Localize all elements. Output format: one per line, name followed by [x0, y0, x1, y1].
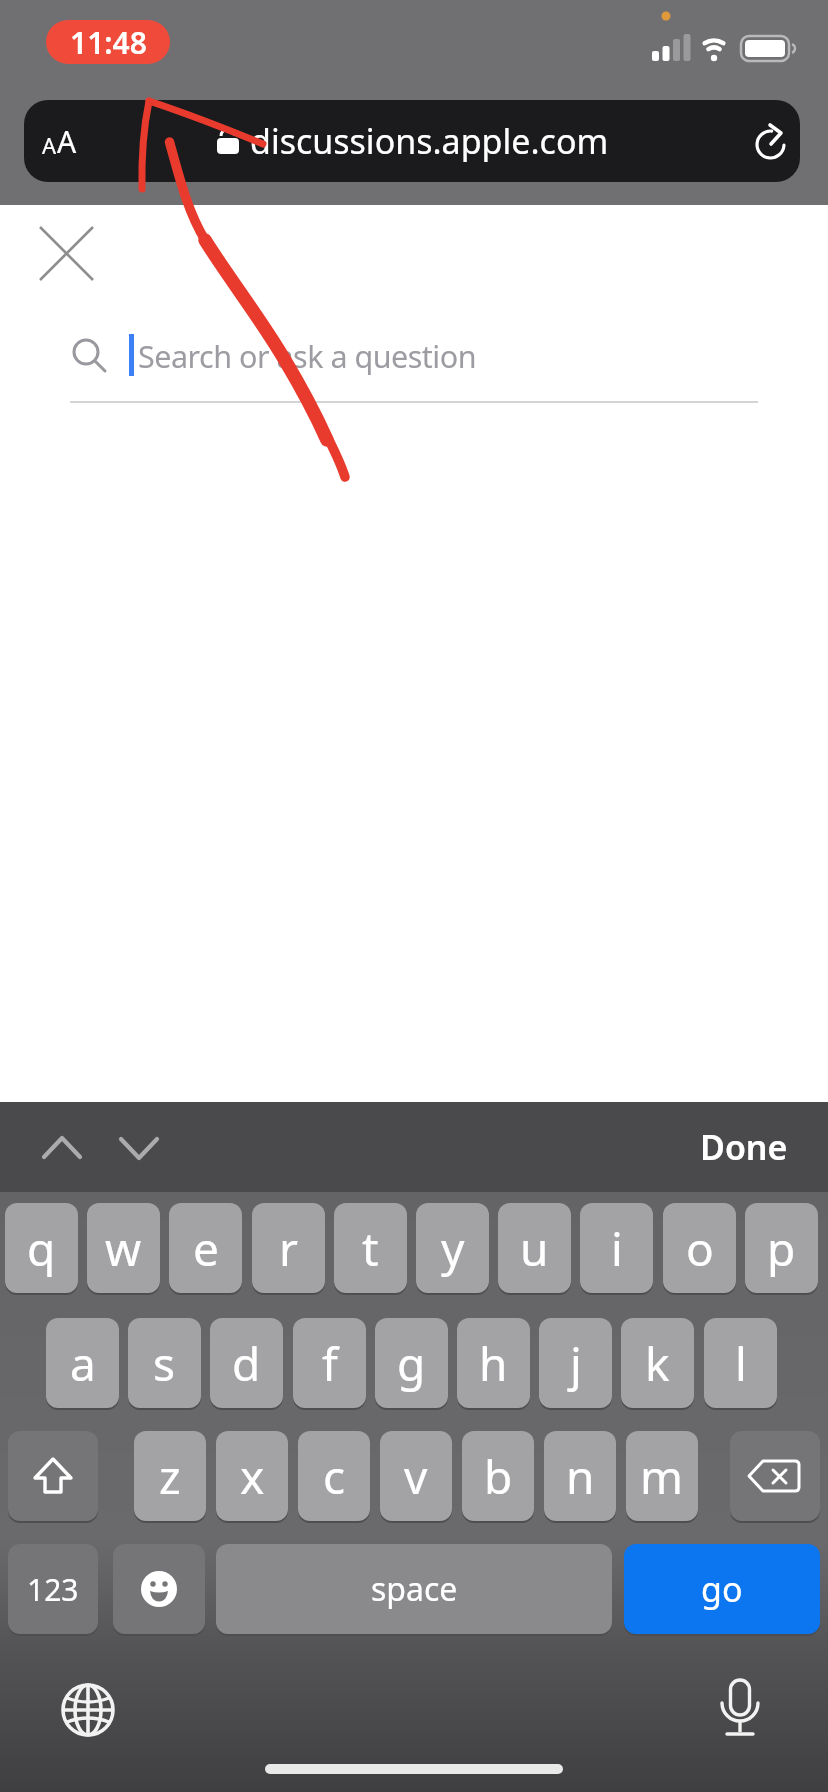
button[interactable]: p [745, 1203, 818, 1293]
button[interactable]: h [457, 1318, 530, 1408]
button[interactable]: m [626, 1431, 698, 1521]
staticText: i [611, 1217, 623, 1280]
staticText: y [441, 1217, 465, 1280]
staticText: s [153, 1332, 176, 1395]
staticText: a [70, 1332, 96, 1395]
staticText: c [323, 1445, 346, 1508]
button[interactable]: A [24, 100, 800, 182]
staticText: j [570, 1332, 582, 1395]
button[interactable]: j [539, 1318, 612, 1408]
button[interactable]: 123 [8, 1544, 98, 1634]
staticText: go [701, 1566, 743, 1612]
staticText: b [484, 1445, 513, 1508]
staticText: f [322, 1332, 338, 1395]
button[interactable]: e [169, 1203, 242, 1293]
button[interactable]: i [580, 1203, 653, 1293]
staticText: g [397, 1332, 426, 1395]
button[interactable]: f [293, 1318, 366, 1408]
staticText: u [520, 1217, 549, 1280]
button[interactable]: n [544, 1431, 616, 1521]
staticText: Done [700, 1124, 788, 1170]
staticText: z [159, 1445, 181, 1508]
button[interactable]: z [134, 1431, 206, 1521]
button[interactable]: k [621, 1318, 694, 1408]
staticText: q [27, 1217, 56, 1280]
staticText: Search or ask a question [138, 335, 477, 377]
button[interactable]: a [46, 1318, 119, 1408]
button[interactable]: u [498, 1203, 571, 1293]
staticText: l [735, 1332, 747, 1395]
button[interactable]: y [416, 1203, 489, 1293]
button[interactable]: space [216, 1544, 612, 1634]
button[interactable]: w [87, 1203, 160, 1293]
button[interactable]: go [624, 1544, 820, 1634]
button[interactable]: l [704, 1318, 777, 1408]
button[interactable]: v [380, 1431, 452, 1521]
button[interactable]: g [375, 1318, 448, 1408]
button[interactable]: d [210, 1318, 283, 1408]
button[interactable] [44, 1126, 164, 1170]
button[interactable] [113, 1544, 205, 1634]
staticText: d [232, 1332, 261, 1395]
button[interactable]: o [663, 1203, 736, 1293]
button[interactable]: b [462, 1431, 534, 1521]
button[interactable] [754, 123, 790, 159]
staticText: n [566, 1445, 595, 1508]
staticText: p [767, 1217, 796, 1280]
staticText: discussions.apple.com [250, 118, 609, 164]
staticText: o [686, 1217, 714, 1280]
staticText: w [105, 1217, 142, 1280]
button[interactable] [40, 227, 93, 280]
button[interactable]: Search or ask a question [138, 330, 698, 382]
staticText: A [42, 130, 57, 160]
button[interactable]: x [216, 1431, 288, 1521]
staticText: m [640, 1445, 684, 1508]
button[interactable]: 11:48 [46, 20, 170, 64]
button[interactable] [730, 1431, 820, 1521]
staticText: e [193, 1217, 219, 1280]
button[interactable]: q [5, 1203, 78, 1293]
button[interactable]: t [334, 1203, 407, 1293]
staticText: A [57, 121, 77, 162]
staticText: k [645, 1332, 670, 1395]
staticText: 11:48 [70, 22, 147, 63]
staticText: r [279, 1217, 298, 1280]
button[interactable] [714, 1678, 766, 1744]
staticText: v [404, 1445, 428, 1508]
button[interactable]: s [128, 1318, 201, 1408]
button[interactable]: Done [700, 1124, 788, 1170]
button[interactable]: r [252, 1203, 325, 1293]
staticText: 123 [27, 1569, 79, 1610]
staticText: x [240, 1445, 265, 1508]
staticText: h [479, 1332, 508, 1395]
button[interactable] [60, 1682, 116, 1738]
button[interactable]: c [298, 1431, 370, 1521]
button[interactable] [8, 1431, 98, 1521]
staticText: space [371, 1567, 458, 1611]
staticText: t [362, 1217, 379, 1280]
